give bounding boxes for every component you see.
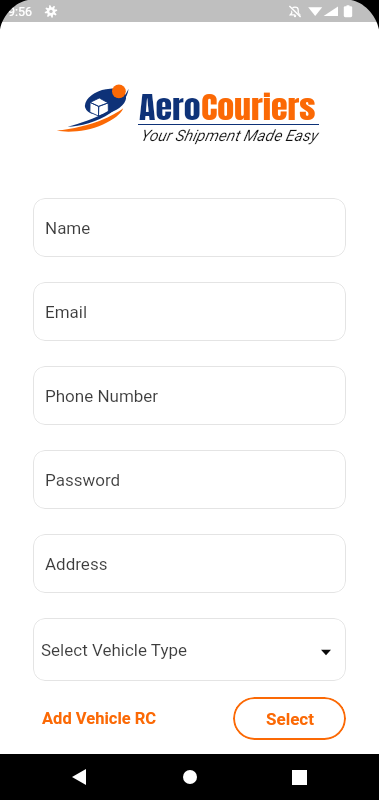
staticText: Name <box>45 218 91 238</box>
staticText: Password <box>45 470 121 490</box>
button[interactable]: Phone Number <box>33 366 346 425</box>
staticText: Select <box>266 709 314 729</box>
button[interactable]: Recent apps <box>282 760 316 794</box>
staticText: Couriers <box>201 85 316 130</box>
button[interactable]: Select <box>233 697 346 740</box>
staticText: Address <box>45 554 108 574</box>
button[interactable]: Email <box>33 282 346 341</box>
button[interactable]: Password <box>33 450 346 509</box>
button[interactable]: Back <box>62 760 96 794</box>
button[interactable]: Add Vehicle RC <box>33 703 166 734</box>
staticText: 9:56 <box>8 4 33 19</box>
staticText: Email <box>45 302 88 322</box>
staticText: Select Vehicle Type <box>41 640 187 660</box>
staticText: Add Vehicle RC <box>42 709 157 728</box>
button[interactable]: Address <box>33 534 346 593</box>
button[interactable]: Select Vehicle Type <box>33 618 346 681</box>
staticText: Phone Number <box>45 386 159 406</box>
button[interactable]: Home <box>173 760 207 794</box>
button[interactable]: Name <box>33 198 346 257</box>
staticText: Your Shipment Made Easy <box>140 126 318 144</box>
staticText: Aero <box>139 85 201 130</box>
